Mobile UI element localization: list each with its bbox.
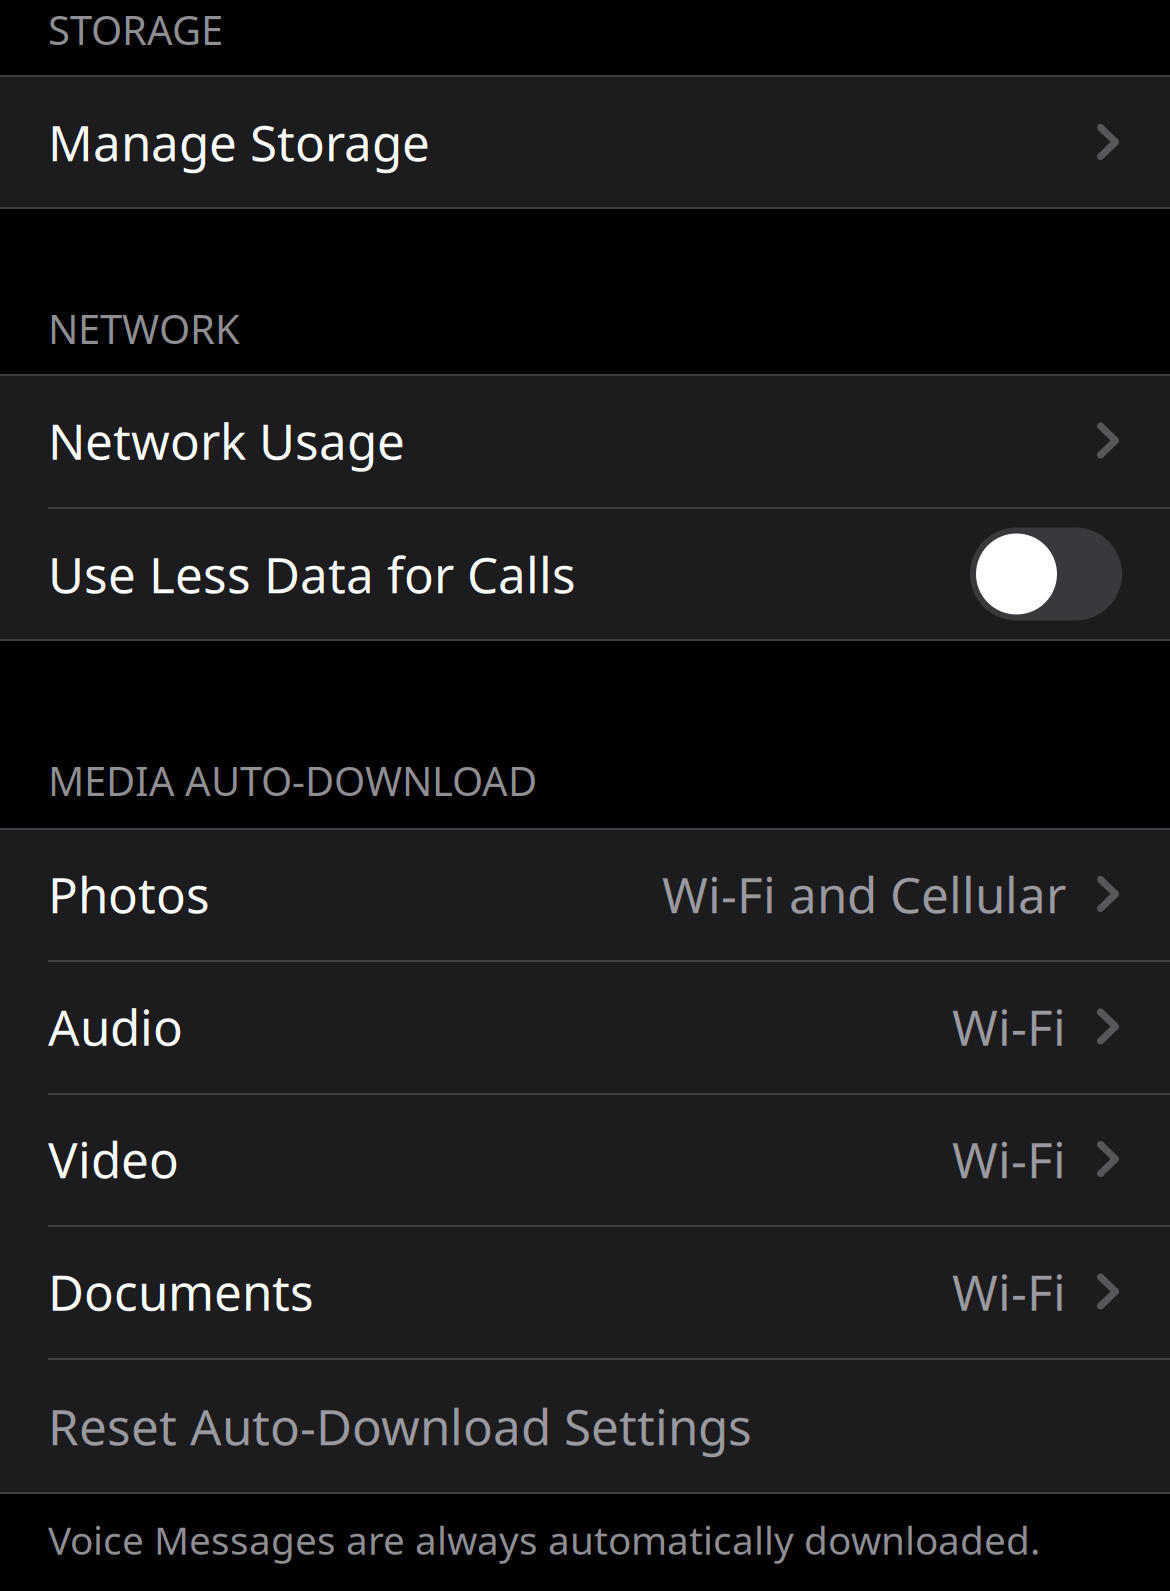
button[interactable]: Audio [0, 960, 1170, 1093]
staticText: Audio [48, 994, 183, 1059]
staticText: Documents [48, 1259, 314, 1324]
staticText: MEDIA AUTO-DOWNLOAD [48, 754, 537, 807]
staticText: Wi-Fi [952, 1259, 1066, 1324]
staticText: NETWORK [48, 302, 240, 355]
button[interactable]: Photos [0, 828, 1170, 960]
staticText: Photos [48, 861, 210, 927]
staticText: Wi-Fi [952, 1126, 1066, 1192]
button[interactable]: Documents [0, 1225, 1170, 1358]
button[interactable]: Reset Auto-Download Settings [0, 1358, 1170, 1494]
staticText: Voice Messages are always automatically … [48, 1514, 1040, 1565]
staticText: STORAGE [48, 3, 223, 56]
staticText: Use Less Data for Calls [48, 541, 576, 607]
staticText: Reset Auto-Download Settings [48, 1393, 752, 1459]
staticText: Video [48, 1126, 179, 1192]
button[interactable]: Network Usage [0, 374, 1170, 507]
staticText: Wi-Fi [952, 994, 1066, 1059]
button[interactable]: Use Less Data for Calls [0, 507, 1170, 641]
button[interactable]: Video [0, 1093, 1170, 1225]
button[interactable]: Manage Storage [0, 75, 1170, 209]
staticText: Wi-Fi and Cellular [662, 861, 1066, 927]
staticText: Network Usage [48, 408, 405, 473]
staticText: Manage Storage [48, 109, 430, 175]
